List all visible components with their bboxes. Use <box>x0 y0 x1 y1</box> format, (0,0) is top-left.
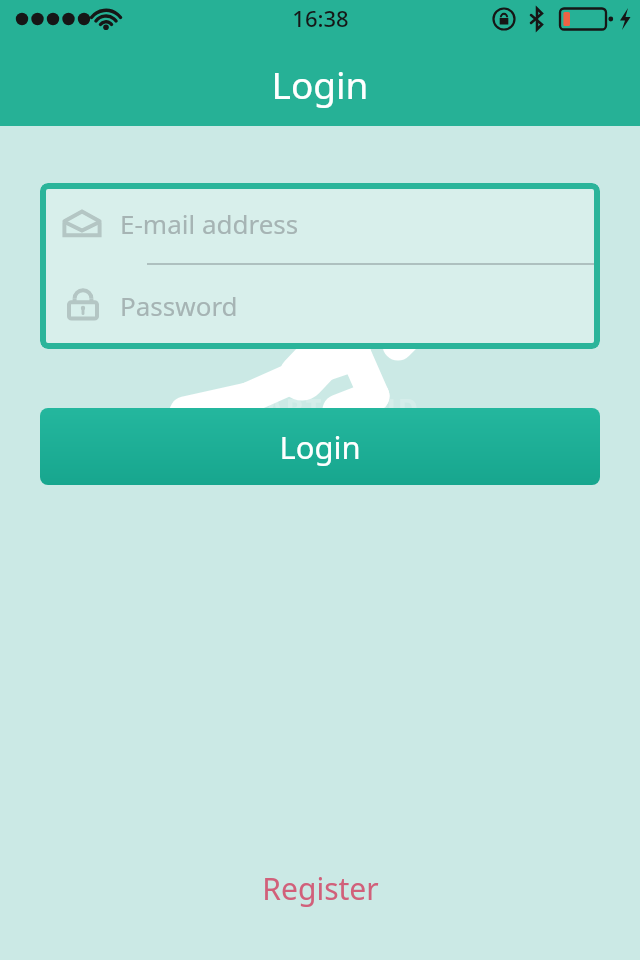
staticText: Login <box>279 426 361 468</box>
button[interactable]: Login <box>40 408 600 485</box>
staticText: E-mail address <box>120 206 299 241</box>
staticText: Password <box>120 288 238 323</box>
button[interactable]: Register <box>238 862 403 915</box>
button[interactable]: Password <box>40 265 600 345</box>
staticText: SMART BAND <box>0 389 640 426</box>
staticText: Login <box>0 59 640 109</box>
staticText: 16:38 <box>292 3 349 33</box>
button[interactable]: E-mail address <box>40 183 600 263</box>
staticText: Register <box>262 868 379 909</box>
